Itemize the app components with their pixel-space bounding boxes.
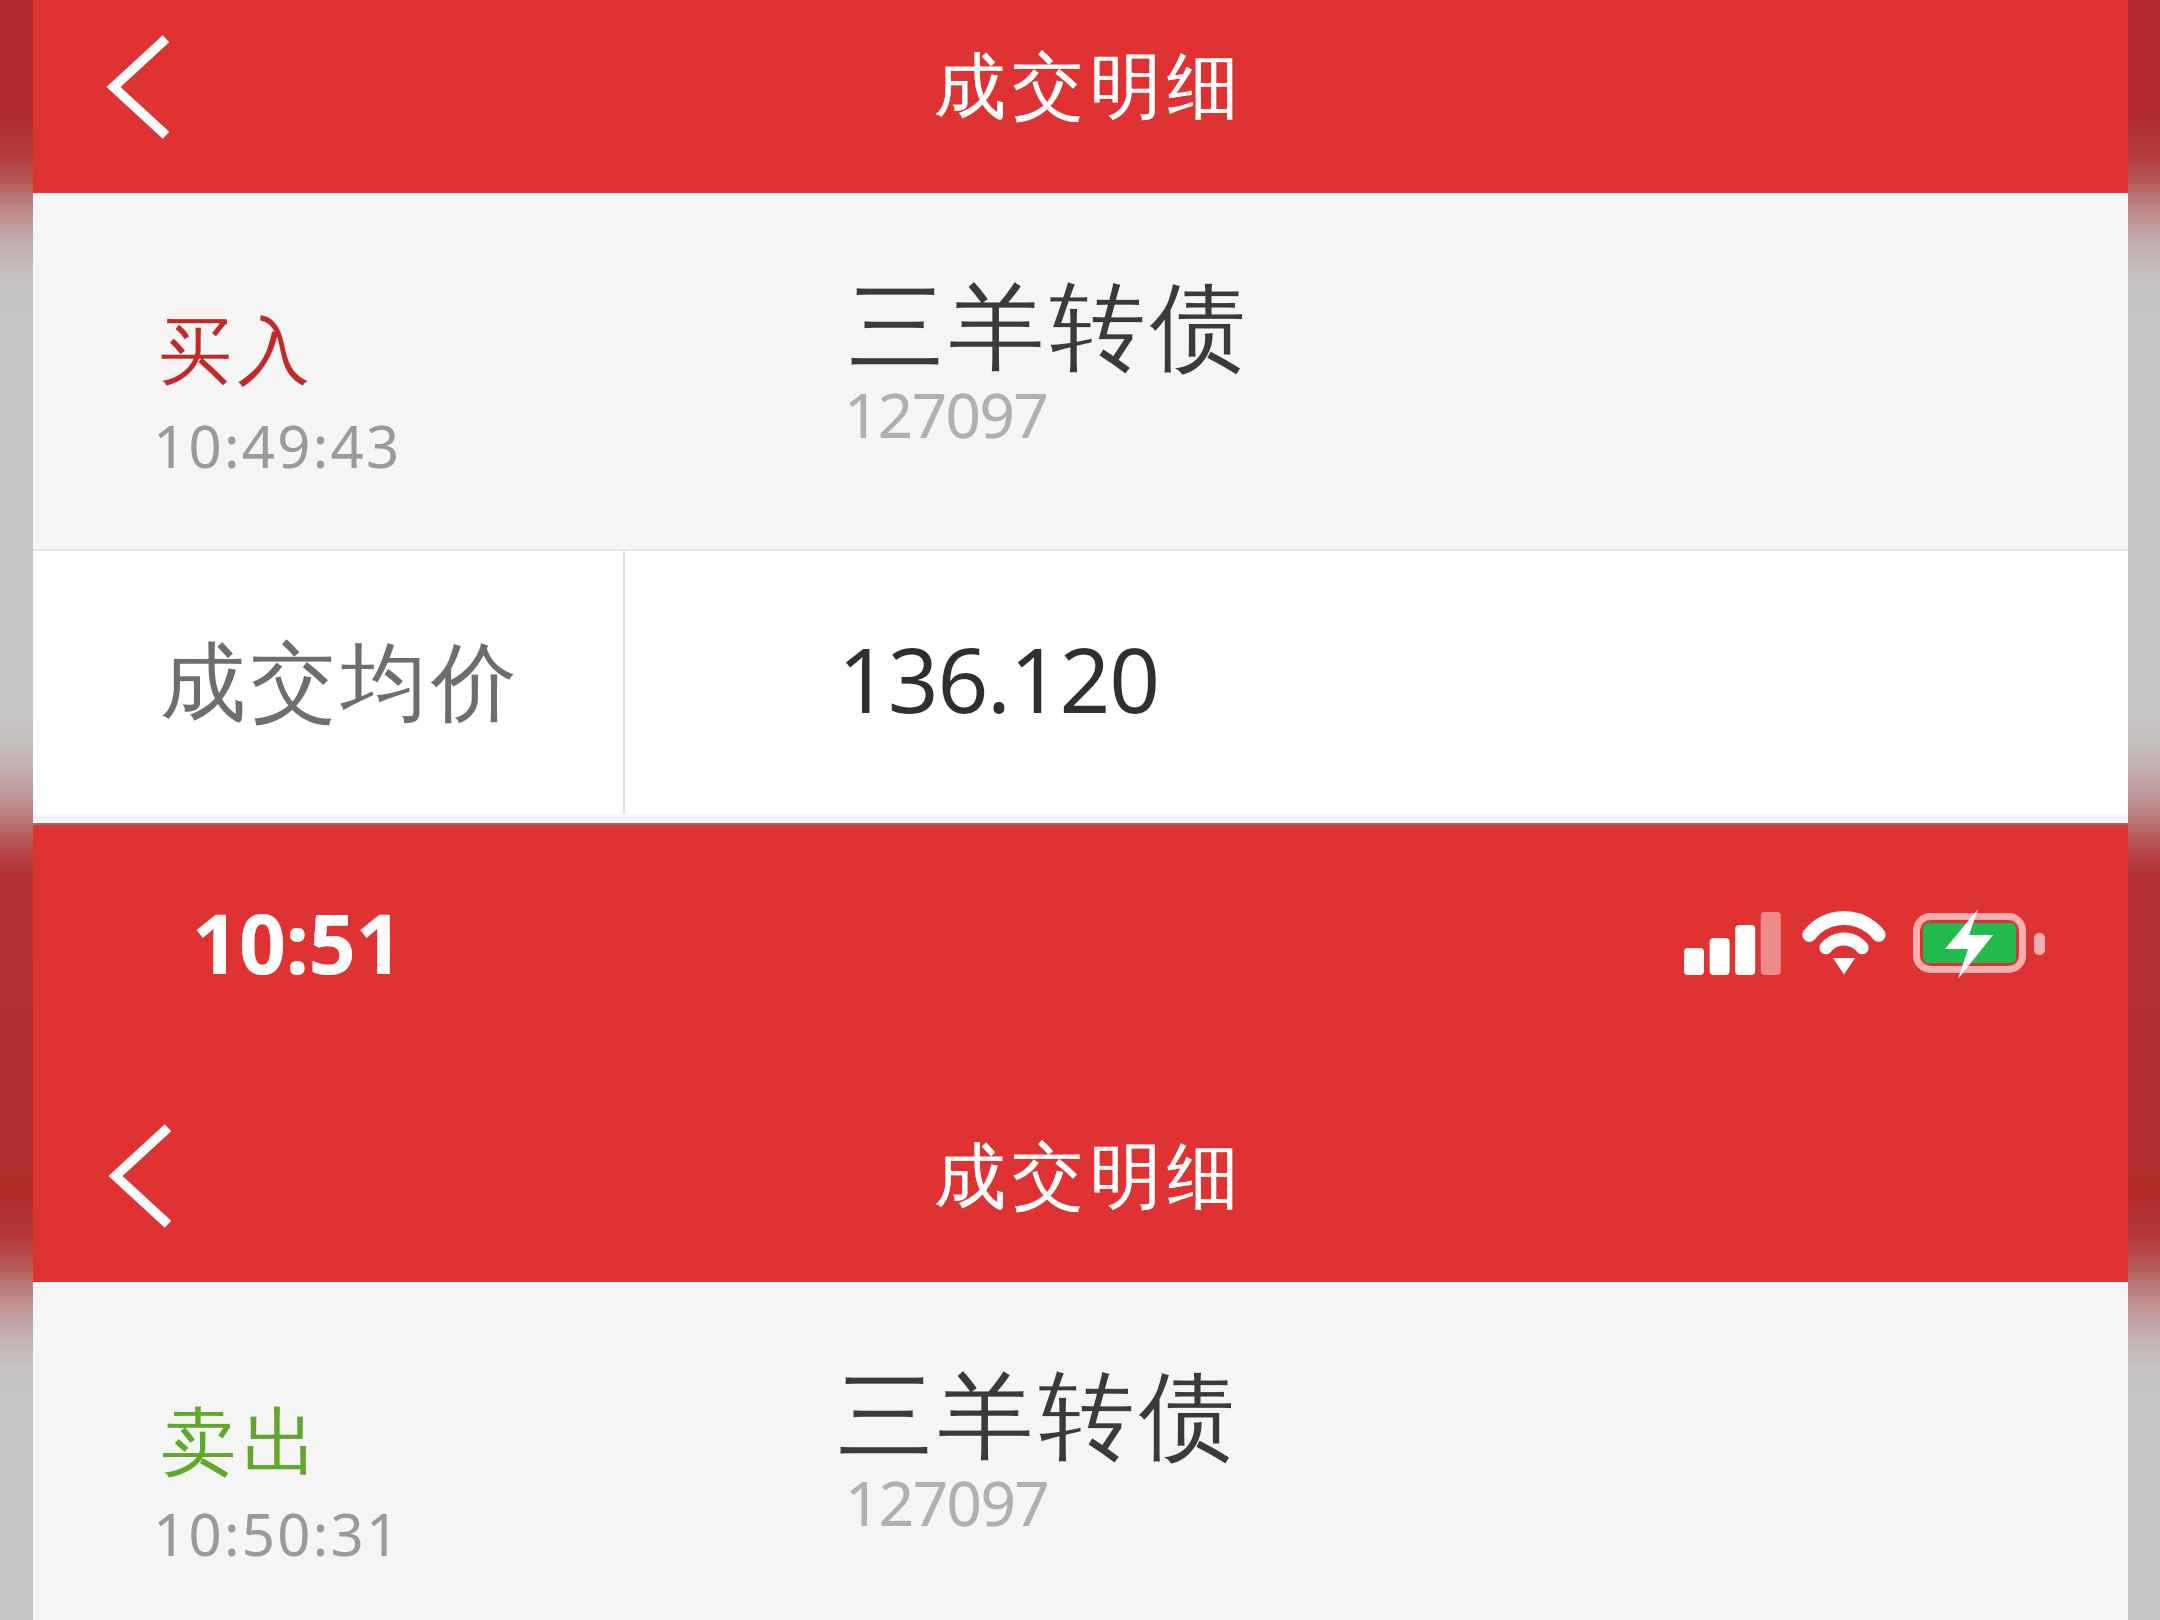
staticText: 成交均价 bbox=[160, 629, 522, 737]
staticText: 10:51 bbox=[192, 886, 403, 998]
button[interactable]: 成交明细 bbox=[934, 42, 1245, 133]
button[interactable]: 卖出 bbox=[33, 1282, 2128, 1620]
staticText: 10:50:31 bbox=[153, 1494, 402, 1573]
staticText: 127097 bbox=[844, 372, 1048, 456]
staticText: 三羊转债 bbox=[846, 268, 1248, 389]
staticText: 三羊转债 bbox=[835, 1357, 1237, 1478]
button[interactable]: Back bbox=[63, 12, 213, 162]
button[interactable]: 成交明细 bbox=[934, 1132, 1245, 1223]
staticText: 10:49:43 bbox=[153, 406, 402, 485]
other: Signal, Wi-Fi and battery status bbox=[1673, 905, 2073, 985]
staticText: 成交明细 bbox=[934, 42, 1245, 133]
staticText: 买入 bbox=[156, 306, 313, 398]
button[interactable]: Back bbox=[65, 1101, 215, 1251]
staticText: 136.120 bbox=[838, 618, 1159, 739]
button[interactable]: 买入 bbox=[33, 193, 2128, 549]
button[interactable]: 成交均价 bbox=[33, 549, 2128, 823]
staticText: 卖出 bbox=[158, 1396, 321, 1490]
staticText: 127097 bbox=[845, 1460, 1049, 1544]
staticText: 成交明细 bbox=[934, 1132, 1245, 1223]
